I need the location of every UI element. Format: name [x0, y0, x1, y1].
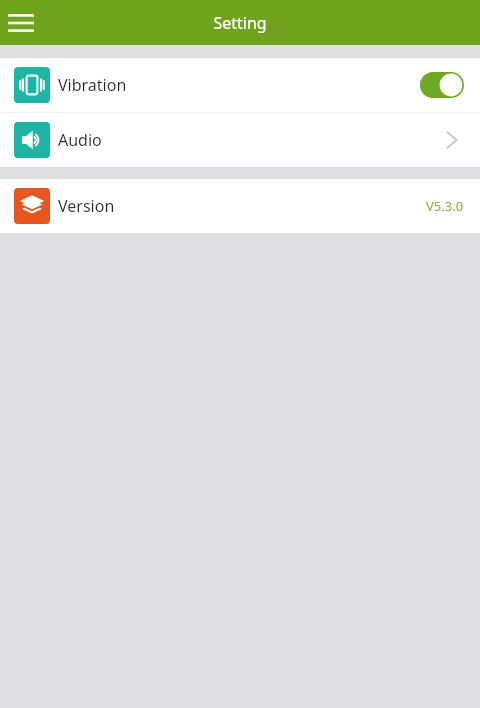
other: Open audio settings — [440, 128, 464, 152]
staticText: Version — [58, 195, 115, 217]
staticText: Audio — [58, 129, 102, 151]
staticText: V5.3.0 — [426, 197, 464, 215]
button[interactable]: Version — [0, 179, 480, 233]
button[interactable]: Audio — [0, 113, 480, 167]
staticText: Setting — [213, 12, 267, 34]
button[interactable]: Vibration toggle, on — [420, 72, 464, 98]
staticText: Vibration — [58, 74, 127, 96]
button[interactable]: Vibration — [0, 58, 480, 112]
button[interactable]: Open navigation menu — [4, 6, 38, 40]
